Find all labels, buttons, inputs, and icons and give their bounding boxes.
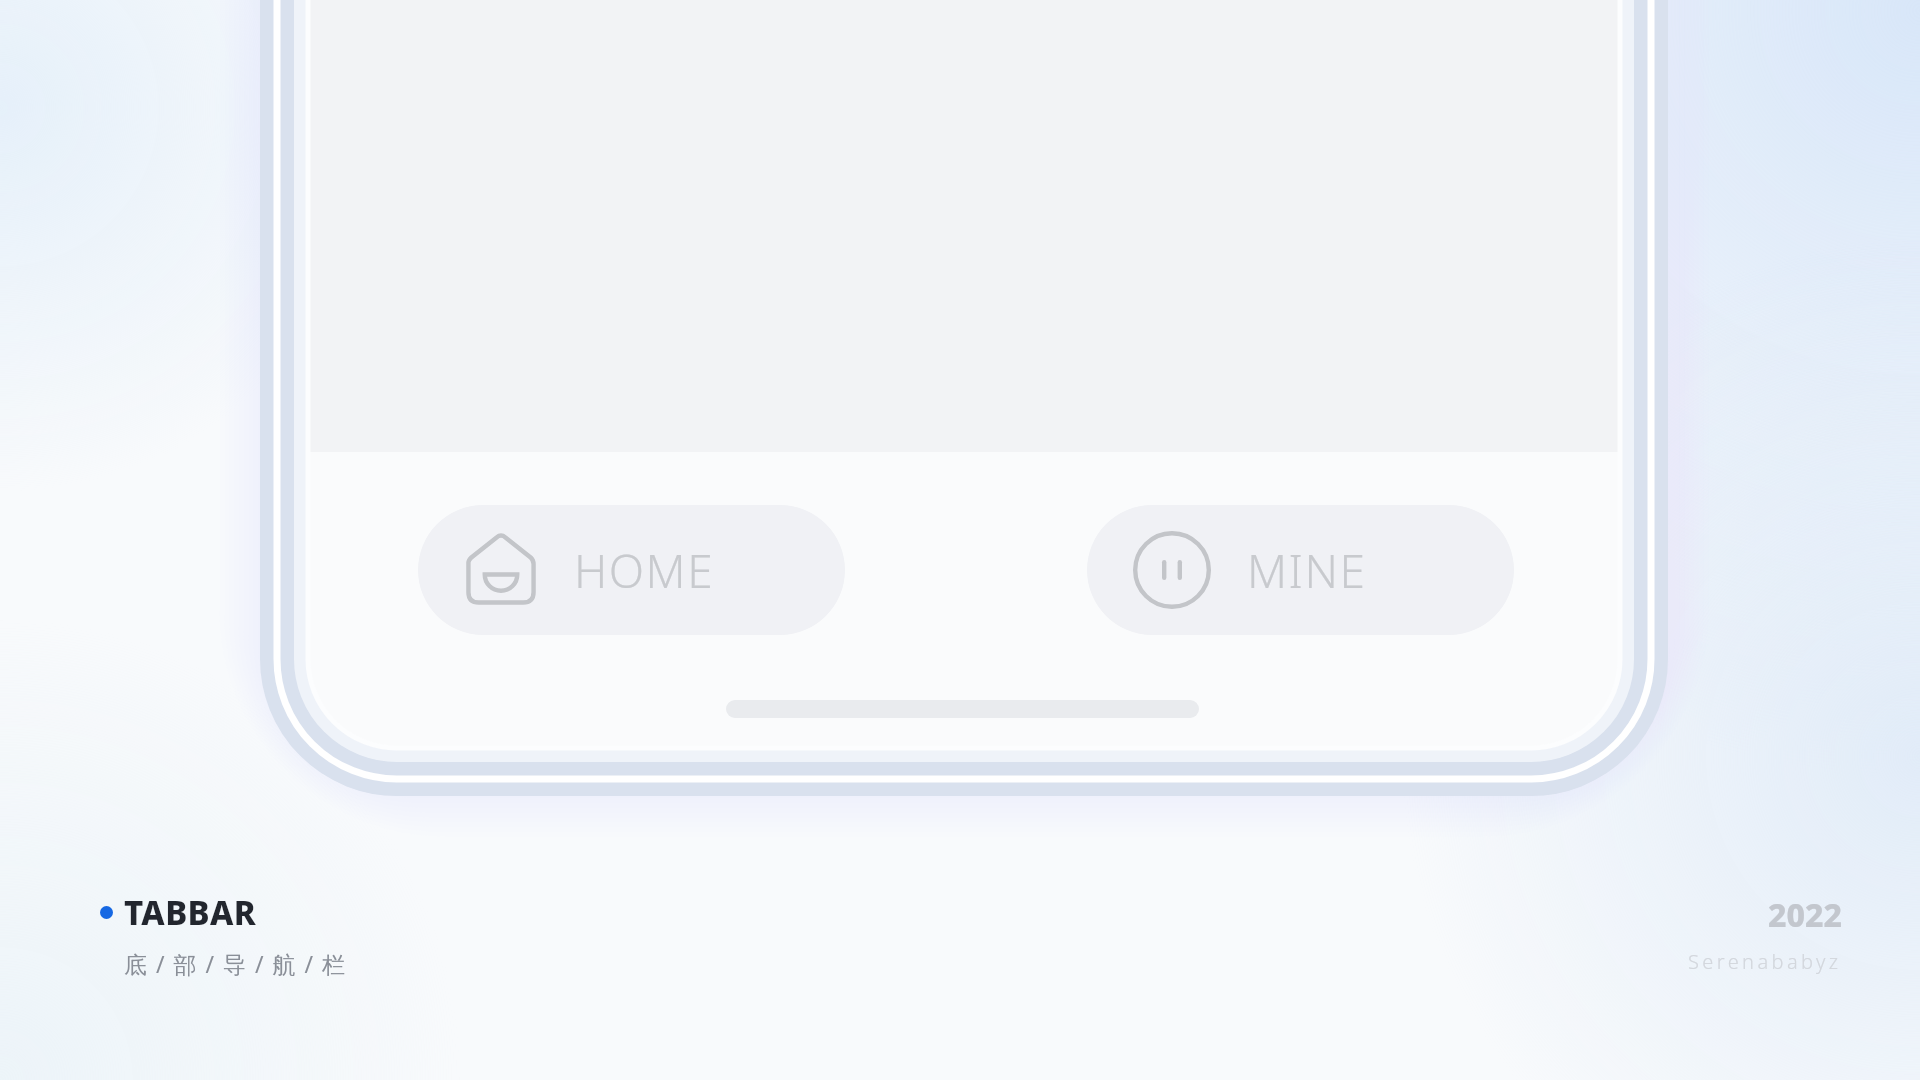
button[interactable]: Home tab [418, 505, 845, 635]
staticText: 2022 [1768, 893, 1842, 937]
staticText: Serenababyz [1688, 948, 1842, 975]
staticText: MINE [1247, 539, 1367, 602]
staticText: HOME [574, 539, 715, 602]
other: Home tab [464, 533, 538, 607]
other: Mine tab [1133, 531, 1211, 609]
button[interactable]: Mine tab [1087, 505, 1514, 635]
staticText: TABBAR [124, 890, 257, 935]
staticText: 底 / 部 / 导 / 航 / 栏 [124, 948, 347, 979]
